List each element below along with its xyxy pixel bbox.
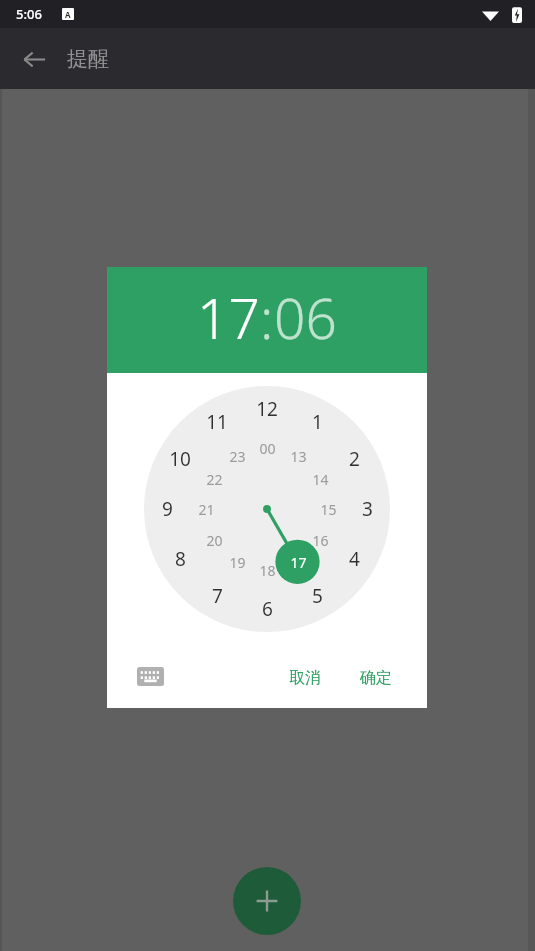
staticText: A bbox=[65, 9, 71, 20]
staticText: 1 bbox=[312, 409, 323, 435]
button[interactable]: 12 bbox=[144, 386, 390, 632]
button[interactable]: 06 bbox=[274, 280, 337, 355]
staticText: 18 bbox=[259, 561, 276, 580]
button[interactable]: 取消 bbox=[283, 660, 327, 696]
staticText: 4 bbox=[349, 546, 360, 572]
staticText: 5:06 bbox=[16, 5, 42, 23]
staticText: 13 bbox=[290, 447, 307, 466]
button[interactable]: Switch to keyboard input bbox=[129, 655, 171, 697]
staticText: 19 bbox=[229, 553, 246, 572]
button[interactable]: Back bbox=[12, 37, 56, 81]
staticText: 22 bbox=[206, 470, 223, 489]
staticText: 17 bbox=[290, 553, 307, 572]
button[interactable]: 确定 bbox=[354, 660, 398, 696]
staticText: 23 bbox=[229, 447, 246, 466]
staticText: 2 bbox=[349, 446, 360, 472]
staticText: 6 bbox=[262, 596, 273, 622]
staticText: : bbox=[260, 280, 274, 355]
staticText: 00 bbox=[259, 439, 276, 458]
staticText: 8 bbox=[175, 546, 186, 572]
button[interactable]: 17 bbox=[197, 280, 260, 355]
staticText: 21 bbox=[198, 500, 215, 519]
staticText: 20 bbox=[206, 531, 223, 550]
staticText: 3 bbox=[362, 496, 373, 522]
staticText: 7 bbox=[212, 583, 223, 609]
staticText: 10 bbox=[169, 446, 191, 472]
staticText: 16 bbox=[312, 531, 329, 550]
staticText: 15 bbox=[320, 500, 337, 519]
staticText: 9 bbox=[162, 496, 173, 522]
staticText: 提醒 bbox=[67, 46, 109, 72]
staticText: 5 bbox=[312, 583, 323, 609]
button[interactable]: Add reminder bbox=[233, 867, 301, 935]
staticText: 12 bbox=[256, 396, 278, 422]
staticText: 14 bbox=[312, 470, 329, 489]
staticText: 11 bbox=[206, 409, 228, 435]
